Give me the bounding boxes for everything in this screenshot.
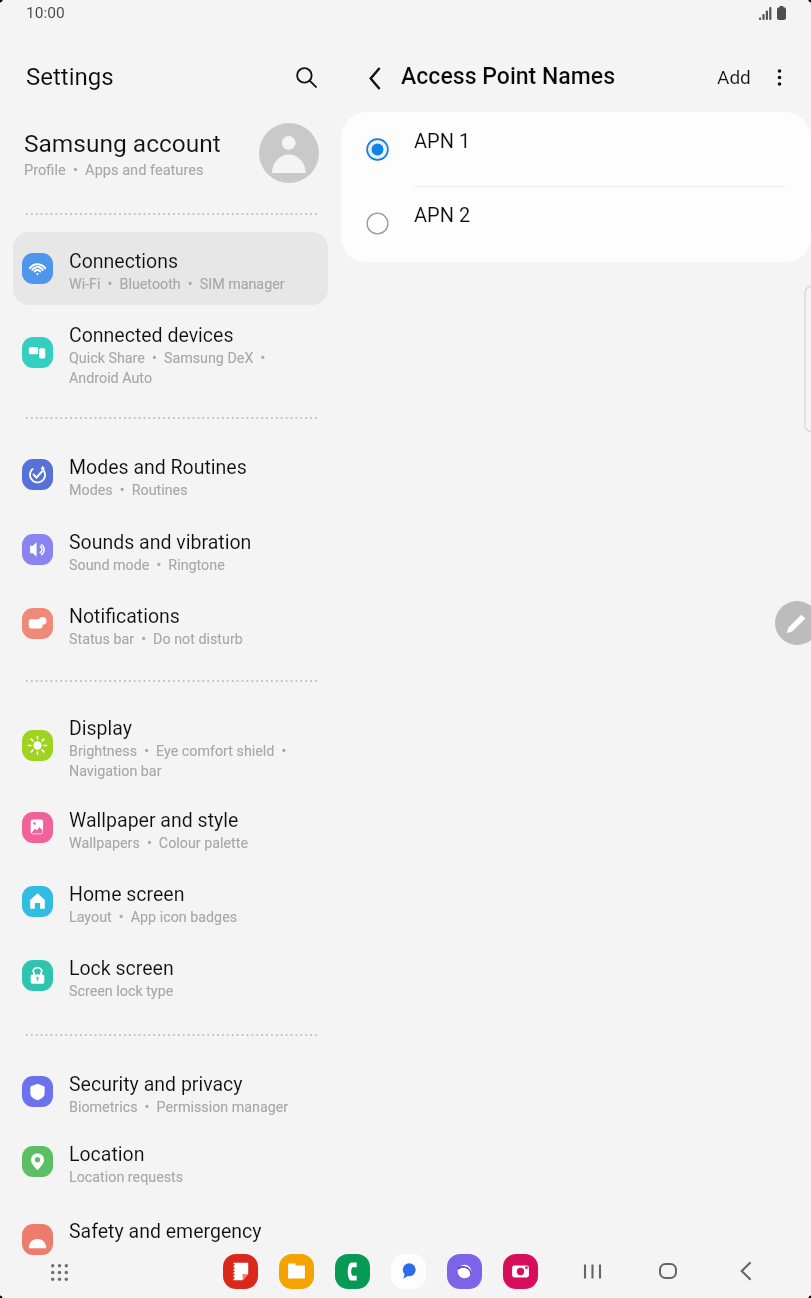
staticText: Biometrics • Permission manager bbox=[69, 1099, 289, 1116]
button[interactable]: More options bbox=[759, 57, 799, 97]
staticText: Brightness • Eye comfort shield • Naviga… bbox=[69, 743, 287, 779]
staticText: Wallpapers • Colour palette bbox=[69, 835, 248, 852]
staticText: APN 1 bbox=[414, 129, 471, 152]
button[interactable]: Samsung account bbox=[0, 119, 341, 187]
staticText: 10:00 bbox=[26, 4, 65, 22]
button[interactable]: Security and privacy bbox=[0, 1051, 341, 1131]
staticText: Connected devices bbox=[69, 324, 234, 347]
button[interactable]: Back bbox=[727, 1254, 761, 1288]
button[interactable]: Phone bbox=[335, 1254, 370, 1289]
button[interactable]: Search bbox=[286, 57, 326, 97]
staticText: Security and privacy bbox=[69, 1073, 243, 1096]
staticText: Lock screen bbox=[69, 957, 174, 980]
button[interactable]: Wallpaper and style bbox=[0, 787, 341, 867]
staticText: Home screen bbox=[69, 883, 185, 906]
button[interactable] bbox=[13, 232, 328, 305]
button[interactable]: Home screen bbox=[0, 861, 341, 941]
button[interactable]: Connections bbox=[0, 228, 341, 308]
staticText: Quick Share • Samsung DeX • Android Auto bbox=[69, 350, 266, 386]
staticText: Samsung account bbox=[24, 129, 221, 158]
button[interactable]: Messages bbox=[391, 1254, 426, 1289]
staticText: Sounds and vibration bbox=[69, 531, 252, 554]
button[interactable]: Samsung Notes bbox=[223, 1254, 258, 1289]
button[interactable]: Sounds and vibration bbox=[0, 509, 341, 589]
button[interactable]: Camera bbox=[503, 1254, 538, 1289]
staticText: Connections bbox=[69, 250, 178, 273]
button[interactable]: Location bbox=[0, 1121, 341, 1201]
staticText: Wi-Fi • Bluetooth • SIM manager bbox=[69, 276, 285, 293]
button[interactable]: Internet bbox=[447, 1254, 482, 1289]
button[interactable]: Modes and Routines bbox=[0, 434, 341, 514]
button[interactable]: Safety and emergency bbox=[0, 1199, 341, 1279]
staticText: Settings bbox=[26, 63, 114, 91]
staticText: Modes • Routines bbox=[69, 482, 188, 499]
staticText: Notifications bbox=[69, 605, 180, 628]
staticText: APN 2 bbox=[414, 203, 471, 226]
button[interactable]: Recent apps bbox=[575, 1254, 609, 1288]
staticText: Screen lock type bbox=[69, 983, 174, 1000]
button[interactable]: Back bbox=[355, 58, 395, 98]
staticText: Location requests bbox=[69, 1169, 184, 1186]
button[interactable]: Display bbox=[0, 705, 341, 785]
button[interactable]: Apps bbox=[42, 1255, 76, 1289]
button[interactable]: APN 2 bbox=[341, 186, 811, 260]
staticText: Access Point Names bbox=[401, 63, 616, 90]
staticText: Safety and emergency bbox=[69, 1220, 262, 1243]
button[interactable]: Home bbox=[651, 1254, 685, 1288]
button[interactable]: Edit bbox=[775, 601, 811, 645]
button[interactable]: Notifications bbox=[0, 583, 341, 663]
staticText: Layout • App icon badges bbox=[69, 909, 238, 926]
button[interactable]: APN 1 bbox=[341, 112, 811, 186]
staticText: Modes and Routines bbox=[69, 456, 247, 479]
staticText: Status bar • Do not disturb bbox=[69, 631, 243, 648]
staticText: Location bbox=[69, 1143, 145, 1166]
button[interactable]: My Files bbox=[279, 1254, 314, 1289]
button[interactable]: Lock screen bbox=[0, 935, 341, 1015]
staticText: Display bbox=[69, 717, 132, 740]
staticText: Sound mode • Ringtone bbox=[69, 557, 225, 574]
staticText: Wallpaper and style bbox=[69, 809, 239, 832]
staticText: Profile • Apps and features bbox=[24, 161, 204, 178]
staticText: Add bbox=[717, 66, 751, 88]
button[interactable]: Add bbox=[709, 57, 759, 97]
button[interactable]: Connected devices bbox=[0, 312, 341, 392]
